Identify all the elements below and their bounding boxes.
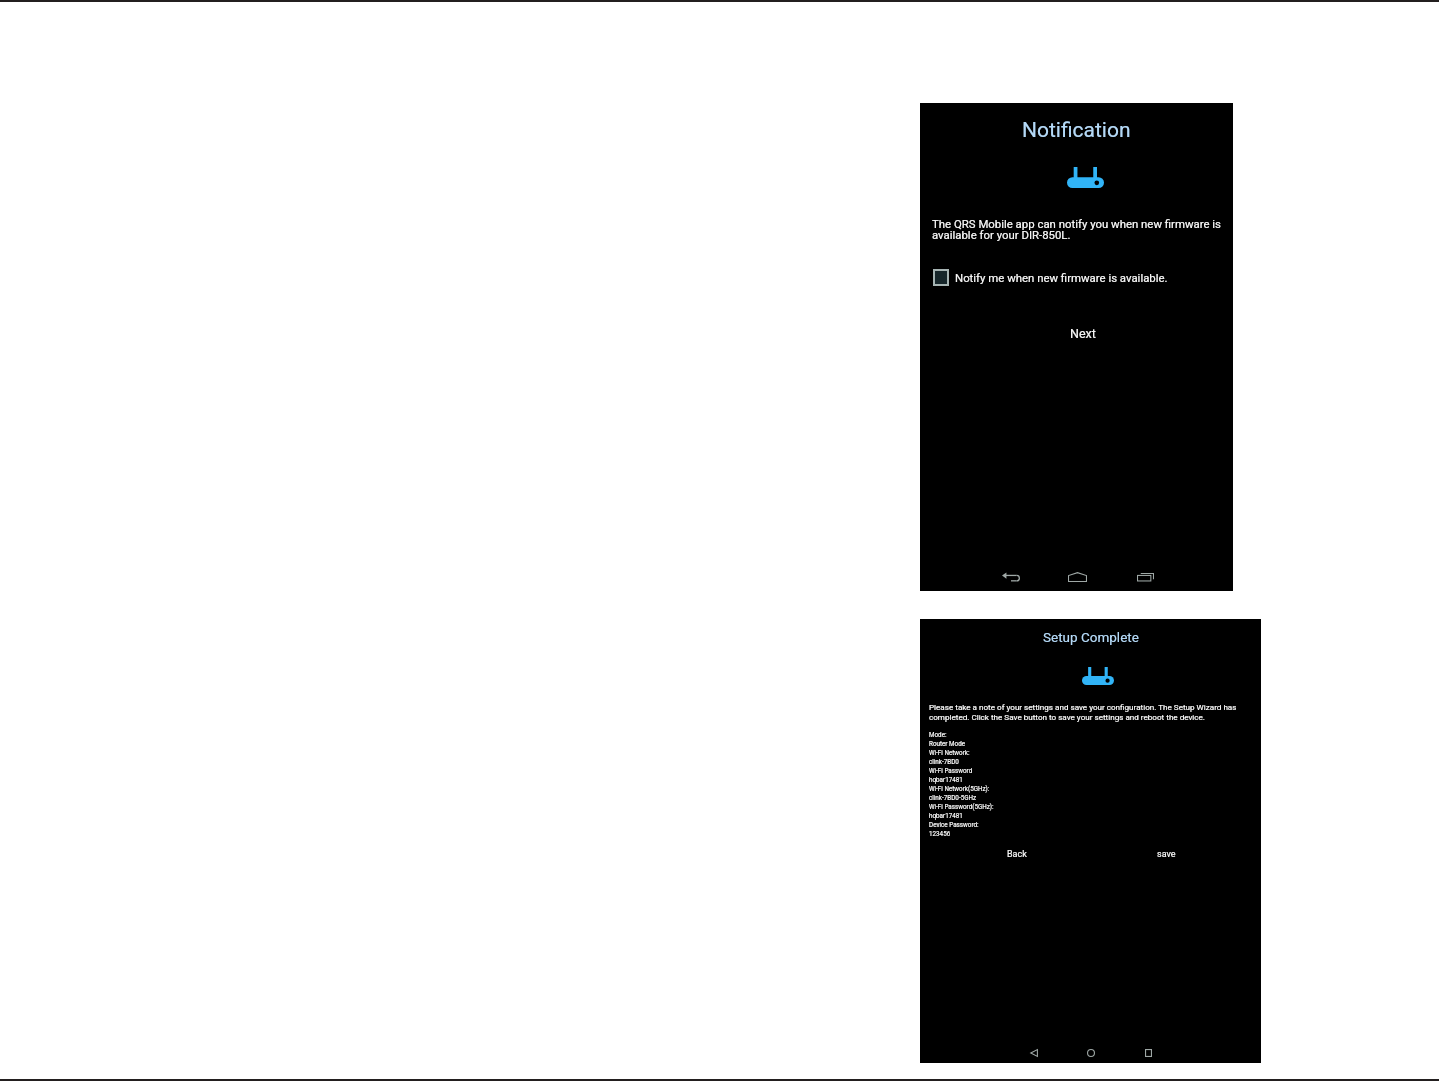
- button[interactable]: Recent apps: [1131, 563, 1159, 591]
- button[interactable]: Back: [1021, 1040, 1047, 1066]
- button[interactable]: Recent apps: [1135, 1040, 1161, 1066]
- button[interactable]: Home: [1063, 563, 1091, 591]
- staticText: Next: [1070, 326, 1096, 341]
- staticText: Mode: Router Mode Wi-Fi Network: clink-7…: [929, 731, 994, 838]
- staticText: save: [1157, 849, 1176, 860]
- button[interactable]: save: [1137, 839, 1196, 870]
- staticText: Notify me when new firmware is available…: [955, 271, 1168, 284]
- button[interactable]: Home: [1078, 1040, 1104, 1066]
- staticText: Setup Complete: [1043, 629, 1139, 645]
- staticText: Notification: [1022, 118, 1131, 143]
- staticText: The QRS Mobile app can notify you when n…: [932, 217, 1221, 242]
- staticText: Back: [1007, 849, 1027, 860]
- staticText: Please take a note of your settings and …: [929, 702, 1237, 722]
- button[interactable]: Back: [987, 839, 1047, 870]
- button[interactable]: Back: [997, 563, 1025, 591]
- button[interactable]: Notify me when new firmware is available…: [933, 269, 1168, 286]
- button[interactable]: Next: [1050, 316, 1116, 351]
